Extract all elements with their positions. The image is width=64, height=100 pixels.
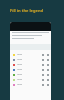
button[interactable]: Label bbox=[10, 62, 51, 67]
staticText: Fill in the legend bbox=[10, 8, 44, 13]
staticText: Label bbox=[17, 63, 23, 66]
staticText: Label bbox=[17, 53, 23, 56]
staticText: Label bbox=[17, 83, 23, 86]
button[interactable]: Label bbox=[10, 67, 51, 72]
staticText: Label bbox=[17, 68, 23, 71]
button[interactable]: Label bbox=[10, 82, 51, 87]
button[interactable]: Label bbox=[10, 57, 51, 62]
staticText: Label bbox=[17, 73, 23, 76]
staticText: Label bbox=[17, 58, 23, 61]
button[interactable]: Label bbox=[10, 72, 51, 77]
button[interactable]: Label bbox=[10, 77, 51, 82]
staticText: Label bbox=[17, 78, 23, 81]
button[interactable]: Label bbox=[10, 52, 51, 57]
